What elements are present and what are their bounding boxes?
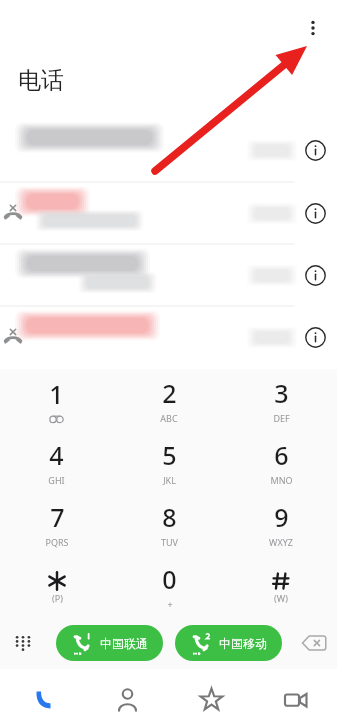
staticText: 8 [162,500,177,534]
button[interactable]: Contacts [85,669,169,717]
button[interactable]: 9 [225,493,337,555]
staticText: PQRS [45,536,69,548]
button[interactable]: 1 [0,369,113,431]
button[interactable]: Call details [295,130,335,170]
button[interactable]: Phone [0,669,85,717]
staticText: MNO [270,474,293,486]
button[interactable]: Video call [253,669,337,717]
button[interactable]: Call details [295,193,335,233]
button[interactable]: 中国联通 [56,625,163,661]
staticText: (P) [52,592,63,604]
button[interactable]: Call details [295,317,335,357]
staticText: 4 [49,438,64,472]
button[interactable]: Call details [0,244,337,306]
button[interactable]: Call details [0,118,337,182]
button[interactable]: 6 [225,431,337,493]
staticText: 3 [274,376,289,410]
button[interactable]: Call details [295,255,335,295]
button[interactable]: 7 [0,493,113,555]
button[interactable]: (W) [225,555,337,617]
button[interactable]: Call details [0,182,337,244]
staticText: 9 [274,500,289,534]
staticText: GHI [48,474,65,486]
staticText: 0 [162,562,177,596]
staticText: 1 [49,377,64,411]
button[interactable]: 8 [113,493,225,555]
staticText: 2 [162,376,177,410]
staticText: JKL [163,474,176,486]
button[interactable]: 2 [113,369,225,431]
button[interactable]: 4 [0,431,113,493]
button[interactable]: Favorites [169,669,253,717]
staticText: ABC [160,412,178,424]
button[interactable]: Call details [0,306,337,368]
staticText: + [167,598,173,610]
staticText: 7 [50,500,65,534]
button[interactable]: 中国移动 [175,625,282,661]
staticText: 电话 [18,66,64,95]
staticText: TUV [161,536,178,548]
staticText: 中国移动 [219,636,267,651]
staticText: 中国联通 [100,636,148,651]
button[interactable]: Backspace [295,624,333,662]
staticText: WXYZ [269,536,293,548]
button[interactable]: 0 [113,555,225,617]
staticText: 6 [274,438,289,472]
button[interactable]: (P) [0,555,113,617]
staticText: DEF [273,412,290,424]
button[interactable]: More options [293,8,333,48]
staticText: 5 [162,438,177,472]
button[interactable]: Keypad [4,624,42,662]
staticText: (W) [274,592,288,604]
button[interactable]: 3 [225,369,337,431]
button[interactable]: 5 [113,431,225,493]
